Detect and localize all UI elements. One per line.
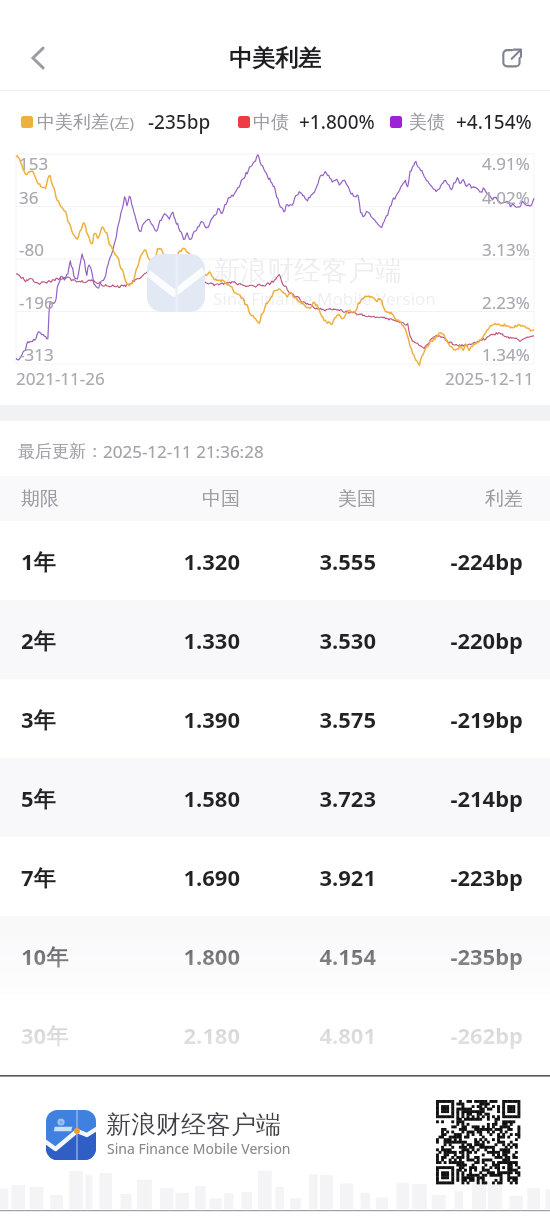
- staticText: 3.723: [236, 783, 376, 813]
- staticText: +4.154%: [456, 109, 532, 135]
- button[interactable]: 10年: [0, 916, 550, 995]
- staticText: 2021-11-26: [16, 367, 105, 390]
- staticText: 3.13%: [482, 238, 530, 261]
- staticText: 1.320: [100, 546, 240, 576]
- staticText: 10年: [21, 941, 69, 971]
- staticText: 2025-12-11 21:36:28: [103, 440, 264, 463]
- staticText: 美债: [409, 111, 445, 134]
- staticText: 2年: [21, 625, 56, 655]
- staticText: 1年: [21, 546, 56, 576]
- staticText: 中国: [120, 487, 240, 511]
- staticText: 2.180: [100, 1020, 240, 1050]
- button[interactable]: 3年: [0, 679, 550, 758]
- staticText: 中美利差: [229, 44, 321, 73]
- button[interactable]: 2年: [0, 600, 550, 679]
- staticText: -262bp: [383, 1020, 523, 1050]
- staticText: 1.34%: [482, 343, 530, 366]
- staticText: 3.575: [236, 704, 376, 734]
- staticText: -80: [19, 238, 44, 261]
- button[interactable]: 7年: [0, 837, 550, 916]
- staticText: Sina Finance Mobile Version: [213, 287, 436, 310]
- staticText: 3.530: [236, 625, 376, 655]
- staticText: 4.91%: [482, 152, 530, 175]
- staticText: 4.801: [236, 1020, 376, 1050]
- staticText: 最后更新：: [18, 441, 103, 462]
- staticText: (左): [110, 112, 135, 132]
- staticText: 4.02%: [482, 186, 530, 209]
- staticText: -223bp: [383, 862, 523, 892]
- staticText: 3.921: [236, 862, 376, 892]
- staticText: 利差: [403, 487, 523, 511]
- staticText: 1.330: [100, 625, 240, 655]
- staticText: Sina Finance Mobile Version: [107, 1139, 291, 1158]
- staticText: 新浪财经客户端: [106, 1109, 281, 1140]
- staticText: 7年: [21, 862, 56, 892]
- staticText: 2025-12-11: [445, 367, 534, 390]
- staticText: -235bp: [148, 109, 211, 135]
- staticText: -196: [19, 291, 54, 314]
- button[interactable]: 1年: [0, 521, 550, 600]
- staticText: 1.800: [100, 941, 240, 971]
- staticText: -220bp: [383, 625, 523, 655]
- staticText: 3年: [21, 704, 56, 734]
- staticText: 期限: [21, 487, 59, 511]
- staticText: -235bp: [383, 941, 523, 971]
- button[interactable]: 30年: [0, 995, 550, 1074]
- staticText: -214bp: [383, 783, 523, 813]
- staticText: 30年: [21, 1020, 69, 1050]
- staticText: +1.800%: [299, 109, 375, 135]
- staticText: 5年: [21, 783, 56, 813]
- staticText: -313: [19, 343, 54, 366]
- staticText: 中债: [253, 111, 289, 134]
- staticText: 36: [19, 186, 39, 209]
- staticText: 2.23%: [482, 291, 530, 314]
- button[interactable]: Share: [484, 30, 540, 86]
- staticText: 1.390: [100, 704, 240, 734]
- staticText: 新浪财经客户端: [213, 254, 402, 288]
- staticText: 中美利差: [37, 111, 109, 134]
- button[interactable]: 5年: [0, 758, 550, 837]
- staticText: 美国: [256, 487, 376, 511]
- staticText: 1.580: [100, 783, 240, 813]
- staticText: 4.154: [236, 941, 376, 971]
- staticText: 1.690: [100, 862, 240, 892]
- staticText: -224bp: [383, 546, 523, 576]
- staticText: -219bp: [383, 704, 523, 734]
- staticText: 153: [19, 152, 49, 175]
- button[interactable]: Back: [10, 30, 66, 86]
- staticText: 3.555: [236, 546, 376, 576]
